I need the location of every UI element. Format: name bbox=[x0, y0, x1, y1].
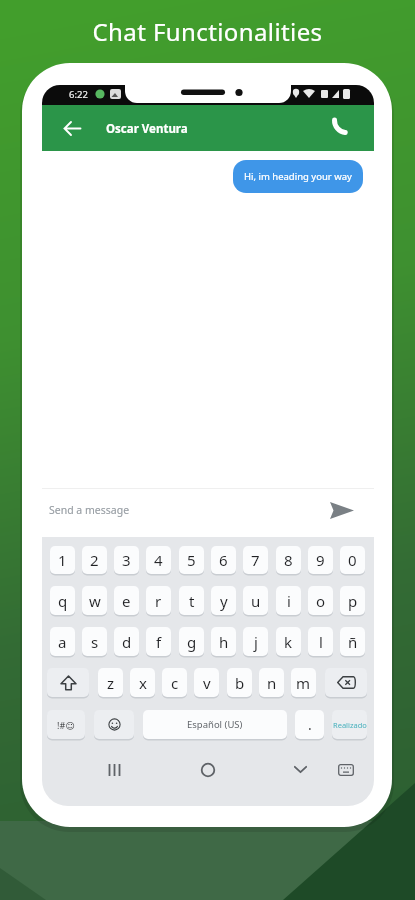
button[interactable]: o bbox=[308, 586, 333, 615]
staticText: Send a message bbox=[49, 503, 130, 517]
staticText: 4 bbox=[154, 550, 163, 570]
button[interactable]: c bbox=[162, 668, 187, 697]
button[interactable]: j bbox=[243, 627, 268, 656]
staticText: e bbox=[122, 591, 131, 611]
staticText: s bbox=[91, 632, 99, 652]
staticText: i bbox=[287, 591, 291, 611]
button[interactable] bbox=[47, 668, 89, 697]
button[interactable]: m bbox=[291, 668, 316, 697]
staticText: v bbox=[203, 673, 211, 693]
button[interactable]: 6 bbox=[211, 546, 236, 574]
button[interactable]: z bbox=[98, 668, 123, 697]
button[interactable]: g bbox=[179, 627, 204, 656]
button[interactable]: t bbox=[179, 586, 204, 615]
staticText: b bbox=[235, 673, 245, 693]
staticText: 9 bbox=[316, 550, 325, 570]
button[interactable]: u bbox=[243, 586, 268, 615]
staticText: f bbox=[156, 632, 162, 652]
button[interactable]: q bbox=[50, 586, 75, 615]
button[interactable] bbox=[58, 115, 86, 142]
button[interactable] bbox=[332, 756, 360, 783]
button[interactable]: v bbox=[194, 668, 219, 697]
button[interactable]: 9 bbox=[308, 546, 333, 574]
staticText: 7 bbox=[251, 550, 260, 570]
button[interactable]: i bbox=[276, 586, 301, 615]
staticText: Español (US) bbox=[187, 718, 243, 731]
button[interactable]: p bbox=[340, 586, 365, 615]
button[interactable]: 1 bbox=[50, 546, 75, 574]
button[interactable]: ñ bbox=[340, 627, 365, 656]
staticText: !#☺ bbox=[57, 719, 75, 731]
button[interactable]: s bbox=[82, 627, 107, 656]
staticText: 3 bbox=[122, 550, 131, 570]
button[interactable]: Send a message bbox=[42, 489, 374, 537]
button[interactable]: . bbox=[295, 710, 324, 739]
button[interactable]: !#☺ bbox=[47, 710, 85, 739]
staticText: t bbox=[189, 591, 195, 611]
staticText: 6:22 bbox=[69, 88, 88, 101]
button[interactable]: 3 bbox=[114, 546, 139, 574]
staticText: ñ bbox=[348, 632, 358, 652]
staticText: d bbox=[122, 632, 132, 652]
button[interactable]: b bbox=[227, 668, 252, 697]
staticText: q bbox=[58, 591, 68, 611]
staticText: 1 bbox=[58, 550, 67, 570]
button[interactable]: 2 bbox=[82, 546, 107, 574]
staticText: y bbox=[220, 591, 228, 611]
button[interactable]: f bbox=[146, 627, 171, 656]
staticText: h bbox=[219, 632, 229, 652]
button[interactable]: r bbox=[146, 586, 171, 615]
button[interactable]: x bbox=[130, 668, 155, 697]
staticText: a bbox=[58, 632, 67, 652]
staticText: r bbox=[155, 591, 162, 611]
staticText: 0 bbox=[348, 550, 357, 570]
staticText: Chat Functionalities bbox=[0, 15, 415, 48]
button[interactable]: 8 bbox=[276, 546, 301, 574]
button[interactable]: a bbox=[50, 627, 75, 656]
staticText: . bbox=[308, 715, 312, 734]
staticText: Realizado bbox=[333, 720, 367, 730]
button[interactable]: k bbox=[276, 627, 301, 656]
button[interactable] bbox=[286, 756, 314, 783]
staticText: j bbox=[254, 632, 258, 652]
button[interactable] bbox=[94, 710, 134, 739]
button[interactable]: w bbox=[82, 586, 107, 615]
staticText: n bbox=[267, 673, 277, 693]
staticText: m bbox=[296, 673, 311, 693]
staticText: u bbox=[251, 591, 261, 611]
button[interactable] bbox=[100, 756, 128, 783]
button[interactable]: 5 bbox=[179, 546, 204, 574]
button[interactable] bbox=[326, 497, 358, 523]
button[interactable]: 7 bbox=[243, 546, 268, 574]
button[interactable]: n bbox=[259, 668, 284, 697]
button[interactable]: l bbox=[308, 627, 333, 656]
button[interactable] bbox=[194, 756, 222, 783]
staticText: g bbox=[187, 632, 197, 652]
staticText: p bbox=[348, 591, 358, 611]
staticText: Oscar Ventura bbox=[106, 121, 188, 137]
button[interactable]: Hi, im heading your way bbox=[233, 160, 363, 193]
button[interactable]: e bbox=[114, 586, 139, 615]
button[interactable]: Español (US) bbox=[143, 710, 287, 739]
button[interactable] bbox=[325, 668, 367, 697]
staticText: w bbox=[89, 591, 101, 611]
staticText: 5 bbox=[187, 550, 196, 570]
button[interactable]: h bbox=[211, 627, 236, 656]
staticText: c bbox=[171, 673, 179, 693]
staticText: 8 bbox=[284, 550, 293, 570]
staticText: z bbox=[107, 673, 115, 693]
button[interactable] bbox=[326, 114, 354, 142]
staticText: Hi, im heading your way bbox=[244, 170, 352, 183]
staticText: k bbox=[284, 632, 293, 652]
button[interactable]: 0 bbox=[340, 546, 365, 574]
staticText: x bbox=[139, 673, 147, 693]
button[interactable]: 4 bbox=[146, 546, 171, 574]
staticText: 2 bbox=[90, 550, 99, 570]
staticText: 6 bbox=[219, 550, 228, 570]
button[interactable]: d bbox=[114, 627, 139, 656]
staticText: o bbox=[316, 591, 326, 611]
staticText: l bbox=[319, 632, 323, 652]
button[interactable]: y bbox=[211, 586, 236, 615]
button[interactable]: Realizado bbox=[332, 710, 367, 739]
